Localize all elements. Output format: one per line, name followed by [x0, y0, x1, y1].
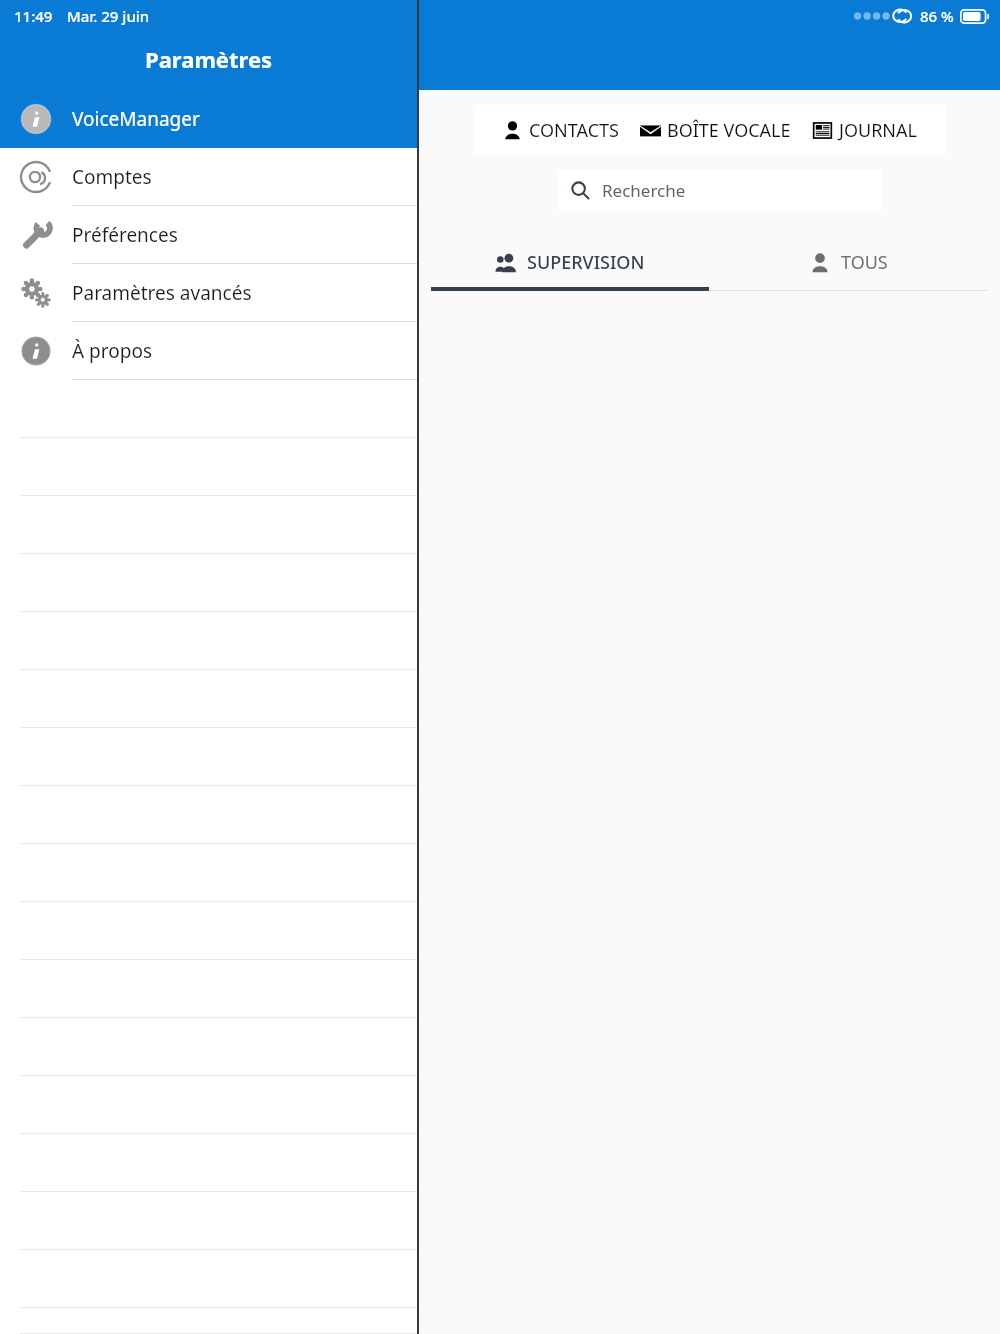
button[interactable]: JOURNAL: [808, 118, 921, 143]
staticText: Paramètres avancés: [72, 280, 252, 306]
button[interactable]: Paramètres avancés: [0, 264, 417, 322]
staticText: Mar. 29 juin: [67, 6, 150, 26]
staticText: Comptes: [72, 164, 152, 190]
button[interactable]: À propos: [0, 322, 417, 380]
staticText: TOUS: [841, 250, 888, 275]
staticText: 86 %: [920, 6, 954, 26]
button[interactable]: TOUS: [709, 233, 988, 291]
button[interactable]: Comptes: [0, 148, 417, 206]
staticText: Préférences: [72, 222, 178, 248]
staticText: 11:49: [14, 6, 53, 26]
button[interactable]: VoiceManager: [0, 90, 417, 148]
button[interactable]: Recherche: [557, 170, 882, 211]
staticText: SUPERVISION: [527, 250, 645, 275]
staticText: Paramètres: [145, 44, 273, 74]
staticText: BOÎTE VOCALE: [667, 118, 791, 143]
button[interactable]: SUPERVISION: [431, 233, 709, 291]
staticText: À propos: [72, 338, 153, 364]
button[interactable]: Préférences: [0, 206, 417, 264]
staticText: CONTACTS: [529, 118, 619, 143]
button[interactable]: BOÎTE VOCALE: [636, 118, 795, 143]
staticText: VoiceManager: [72, 106, 200, 132]
button[interactable]: CONTACTS: [498, 118, 623, 143]
staticText: JOURNAL: [839, 118, 917, 143]
staticText: Recherche: [602, 179, 686, 202]
